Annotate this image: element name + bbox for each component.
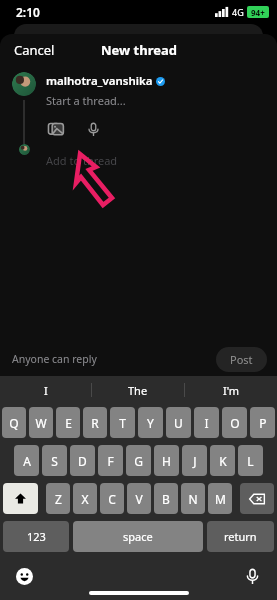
button[interactable]: K — [210, 445, 235, 476]
staticText: Y — [147, 415, 154, 431]
staticText: malhotra_vanshika — [46, 73, 153, 89]
button[interactable]: Shift — [3, 483, 38, 514]
staticText: K — [219, 453, 227, 469]
button[interactable]: I — [194, 407, 219, 438]
staticText: E — [65, 415, 72, 431]
staticText: G — [134, 453, 143, 469]
staticText: Start a thread... — [46, 93, 126, 108]
staticText: F — [107, 453, 114, 469]
button[interactable]: Emoji — [16, 568, 33, 585]
staticText: X — [81, 491, 89, 507]
button[interactable]: Q — [2, 407, 26, 438]
button[interactable]: return — [207, 521, 274, 552]
button[interactable]: E — [56, 407, 80, 438]
button[interactable]: Record audio — [84, 120, 103, 139]
button[interactable]: B — [154, 483, 178, 514]
staticText: The — [128, 383, 148, 398]
staticText: B — [162, 491, 170, 507]
staticText: R — [91, 415, 99, 431]
staticText: S — [51, 453, 58, 469]
button[interactable]: H — [154, 445, 179, 476]
button[interactable]: I'm — [185, 376, 277, 404]
staticText: Q — [9, 415, 19, 431]
staticText: V — [135, 491, 143, 507]
staticText: return — [224, 529, 257, 544]
staticText: I'm — [223, 383, 240, 398]
button[interactable]: I — [0, 376, 91, 404]
staticText: T — [119, 415, 126, 431]
button[interactable]: space — [73, 521, 203, 552]
staticText: J — [193, 453, 197, 469]
staticText: L — [247, 453, 254, 469]
button[interactable]: N — [181, 483, 205, 514]
staticText: M — [215, 491, 226, 507]
button[interactable]: Voice input — [244, 568, 261, 585]
button[interactable]: D — [70, 445, 95, 476]
button[interactable]: P — [250, 407, 275, 438]
staticText: U — [174, 415, 183, 431]
button[interactable]: Backspace — [240, 483, 274, 514]
staticText: Z — [55, 491, 62, 507]
button[interactable]: J — [182, 445, 207, 476]
staticText: P — [259, 415, 267, 431]
staticText: 2:10 — [16, 4, 40, 20]
button[interactable]: O — [222, 407, 247, 438]
staticText: 4G — [232, 6, 244, 18]
button[interactable]: Y — [138, 407, 163, 438]
button[interactable]: R — [83, 407, 107, 438]
button[interactable]: L — [238, 445, 263, 476]
button[interactable]: W — [29, 407, 53, 438]
button[interactable]: V — [127, 483, 151, 514]
staticText: New thread — [101, 41, 177, 59]
staticText: O — [230, 415, 240, 431]
staticText: W — [35, 415, 47, 431]
button[interactable]: M — [208, 483, 232, 514]
button[interactable]: C — [100, 483, 124, 514]
button[interactable]: X — [73, 483, 97, 514]
staticText: I — [44, 383, 48, 398]
staticText: 94+ — [251, 7, 265, 18]
staticText: N — [188, 491, 198, 507]
button[interactable]: Z — [46, 483, 70, 514]
button[interactable]: Cancel — [0, 35, 69, 65]
staticText: A — [23, 453, 31, 469]
button[interactable]: The — [92, 376, 184, 404]
staticText: Anyone can reply — [12, 352, 97, 366]
staticText: space — [123, 529, 153, 544]
button[interactable]: A — [14, 445, 39, 476]
button[interactable]: F — [98, 445, 123, 476]
staticText: Cancel — [14, 41, 55, 59]
button[interactable]: Post — [216, 347, 267, 372]
button[interactable]: Add photo — [46, 119, 66, 139]
staticText: D — [78, 453, 87, 469]
button[interactable]: 123 — [3, 521, 69, 552]
staticText: H — [162, 453, 171, 469]
staticText: Add to thread — [46, 153, 118, 168]
staticText: Post — [230, 352, 253, 367]
button[interactable]: S — [42, 445, 67, 476]
staticText: C — [108, 491, 116, 507]
staticText: 123 — [27, 529, 46, 544]
button[interactable]: G — [126, 445, 151, 476]
button[interactable]: T — [110, 407, 135, 438]
button[interactable]: U — [166, 407, 191, 438]
staticText: I — [204, 415, 209, 431]
